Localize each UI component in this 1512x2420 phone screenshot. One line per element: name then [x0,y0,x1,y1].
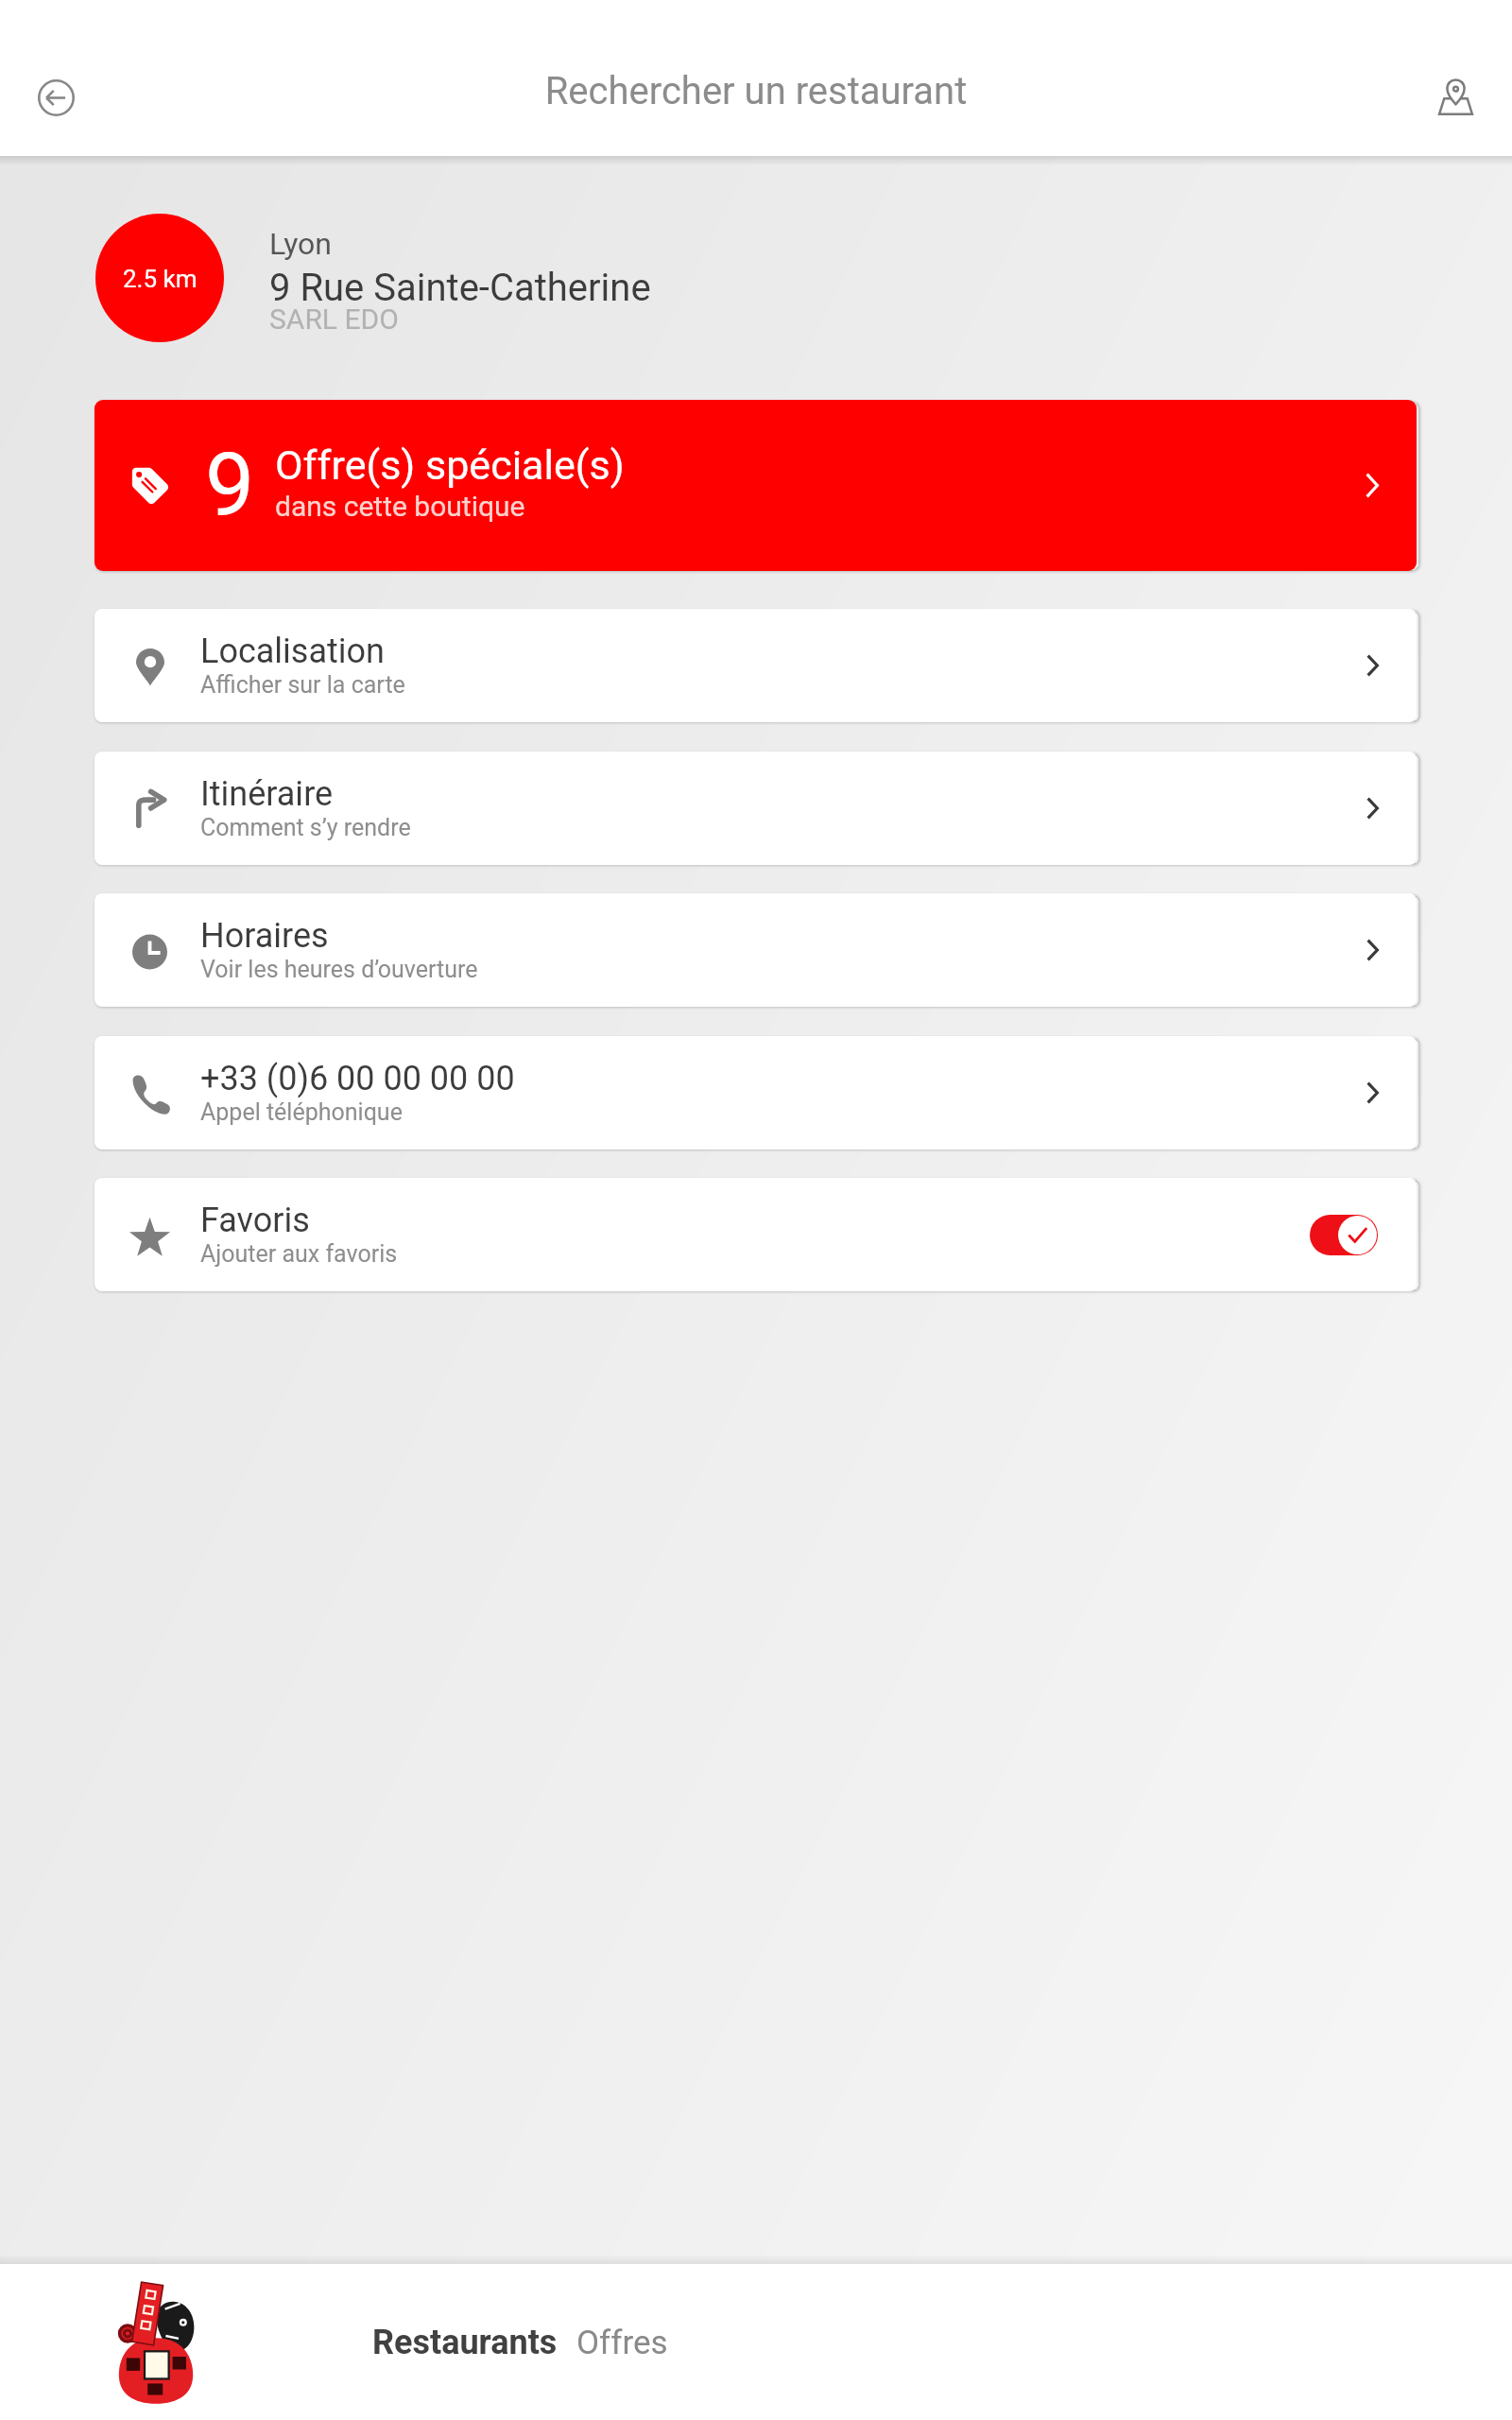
staticText: Comment s’y rendre [200,814,411,841]
staticText: Lyon [269,226,332,262]
button[interactable]: Carte [1423,64,1487,129]
staticText: +33 (0)6 00 00 00 00 [200,1059,515,1098]
button[interactable]: Offres [576,2307,668,2379]
staticText: Restaurants [372,2323,558,2362]
staticText: 2.5 km [123,265,198,293]
staticText: Ajouter aux favoris [200,1240,398,1268]
button[interactable]: 9 [94,400,1417,571]
button[interactable]: +33 (0)6 00 00 00 00 [94,1036,1417,1149]
staticText: Itinéraire [200,774,334,814]
staticText: Voir les heures d’ouverture [200,956,478,983]
button[interactable]: Restaurants [372,2306,558,2379]
staticText: Favoris [200,1201,310,1240]
button[interactable]: Horaires [94,893,1417,1007]
staticText: Appel téléphonique [200,1098,403,1126]
staticText: SARL EDO [269,302,399,336]
staticText: Rechercher un restaurant [0,69,1512,113]
staticText: Horaires [200,916,329,956]
button[interactable]: Itinéraire [94,752,1417,865]
staticText: 9 [205,434,245,537]
button[interactable]: Retour [24,65,88,130]
staticText: Offres [576,2324,668,2362]
button[interactable]: Localisation [94,609,1417,722]
staticText: Afficher sur la carte [200,671,405,699]
staticText: Offre(s) spéciale(s) [275,441,625,489]
button[interactable]: Ajouter aux favoris [1310,1215,1378,1255]
staticText: 9 Rue Sainte-Catherine [269,266,651,310]
staticText: dans cette boutique [275,490,525,523]
button[interactable]: EDO [104,2264,208,2420]
staticText: Localisation [200,631,385,671]
button[interactable]: Favoris [94,1178,1417,1291]
